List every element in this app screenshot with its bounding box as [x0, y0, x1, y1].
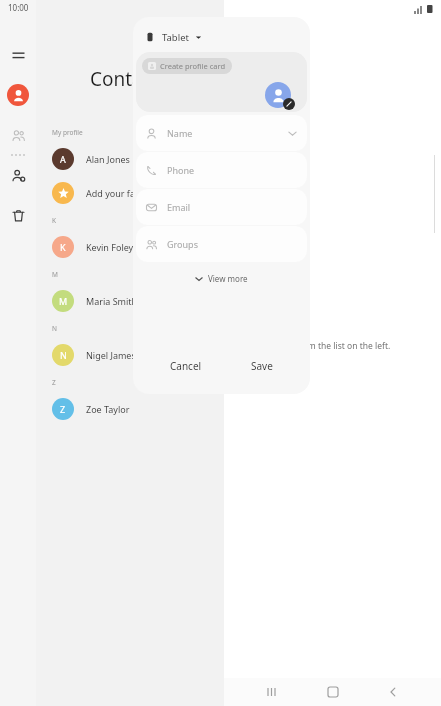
staticText: Z: [60, 403, 66, 415]
button[interactable]: Recents: [260, 680, 284, 704]
staticText: Name: [167, 127, 193, 139]
button[interactable]: Menu: [7, 44, 29, 66]
button[interactable]: View more: [189, 270, 254, 287]
staticText: Groups: [167, 238, 198, 250]
staticText: Z: [52, 378, 56, 387]
staticText: Select a contact from the list on the le…: [232, 340, 391, 352]
button[interactable]: Add your favorites: [36, 176, 224, 210]
staticText: View more: [208, 273, 248, 284]
button[interactable]: Phone: [136, 152, 307, 188]
button[interactable]: Manage contacts: [7, 164, 29, 186]
staticText: M: [59, 295, 68, 307]
button[interactable]: Home: [321, 680, 345, 704]
button[interactable]: Groups: [136, 226, 307, 262]
staticText: Cancel: [170, 359, 202, 373]
button[interactable]: Tablet: [145, 27, 202, 47]
staticText: Nigel Jameson: [86, 349, 147, 361]
button[interactable]: K: [36, 230, 224, 264]
staticText: A: [60, 153, 66, 165]
button[interactable]: Edit photo: [283, 98, 295, 110]
button[interactable]: N: [36, 338, 224, 372]
staticText: M: [52, 270, 58, 279]
staticText: K: [52, 216, 57, 225]
button[interactable]: Groups: [7, 124, 29, 146]
staticText: Tablet: [162, 31, 189, 44]
staticText: Save: [251, 359, 273, 373]
button[interactable]: Name: [136, 115, 307, 151]
staticText: Maria Smith: [86, 295, 138, 307]
button[interactable]: Cancel: [158, 354, 214, 378]
staticText: Phone: [167, 164, 195, 176]
button[interactable]: Profile photo: [265, 82, 291, 108]
button[interactable]: Z: [36, 392, 224, 426]
button[interactable]: Trash: [7, 204, 29, 226]
staticText: Zoe Taylor: [86, 403, 130, 415]
staticText: Add your favorites: [86, 187, 164, 199]
staticText: Kevin Foley: [86, 241, 134, 253]
staticText: Contacts: [90, 66, 168, 92]
staticText: My profile: [52, 128, 83, 137]
button[interactable]: Save: [239, 354, 285, 378]
staticText: N: [52, 324, 57, 333]
button[interactable]: A: [36, 142, 224, 176]
button[interactable]: Back: [381, 680, 405, 704]
staticText: Email: [167, 201, 191, 213]
staticText: Create profile card: [160, 61, 226, 71]
button[interactable]: M: [36, 284, 224, 318]
button[interactable]: Contacts: [7, 84, 29, 106]
staticText: 10:00: [8, 2, 29, 13]
staticText: N: [60, 349, 67, 361]
staticText: Alan Jones: [86, 153, 130, 165]
button[interactable]: Email: [136, 189, 307, 225]
staticText: K: [60, 241, 66, 253]
button[interactable]: Create profile card: [142, 58, 232, 74]
